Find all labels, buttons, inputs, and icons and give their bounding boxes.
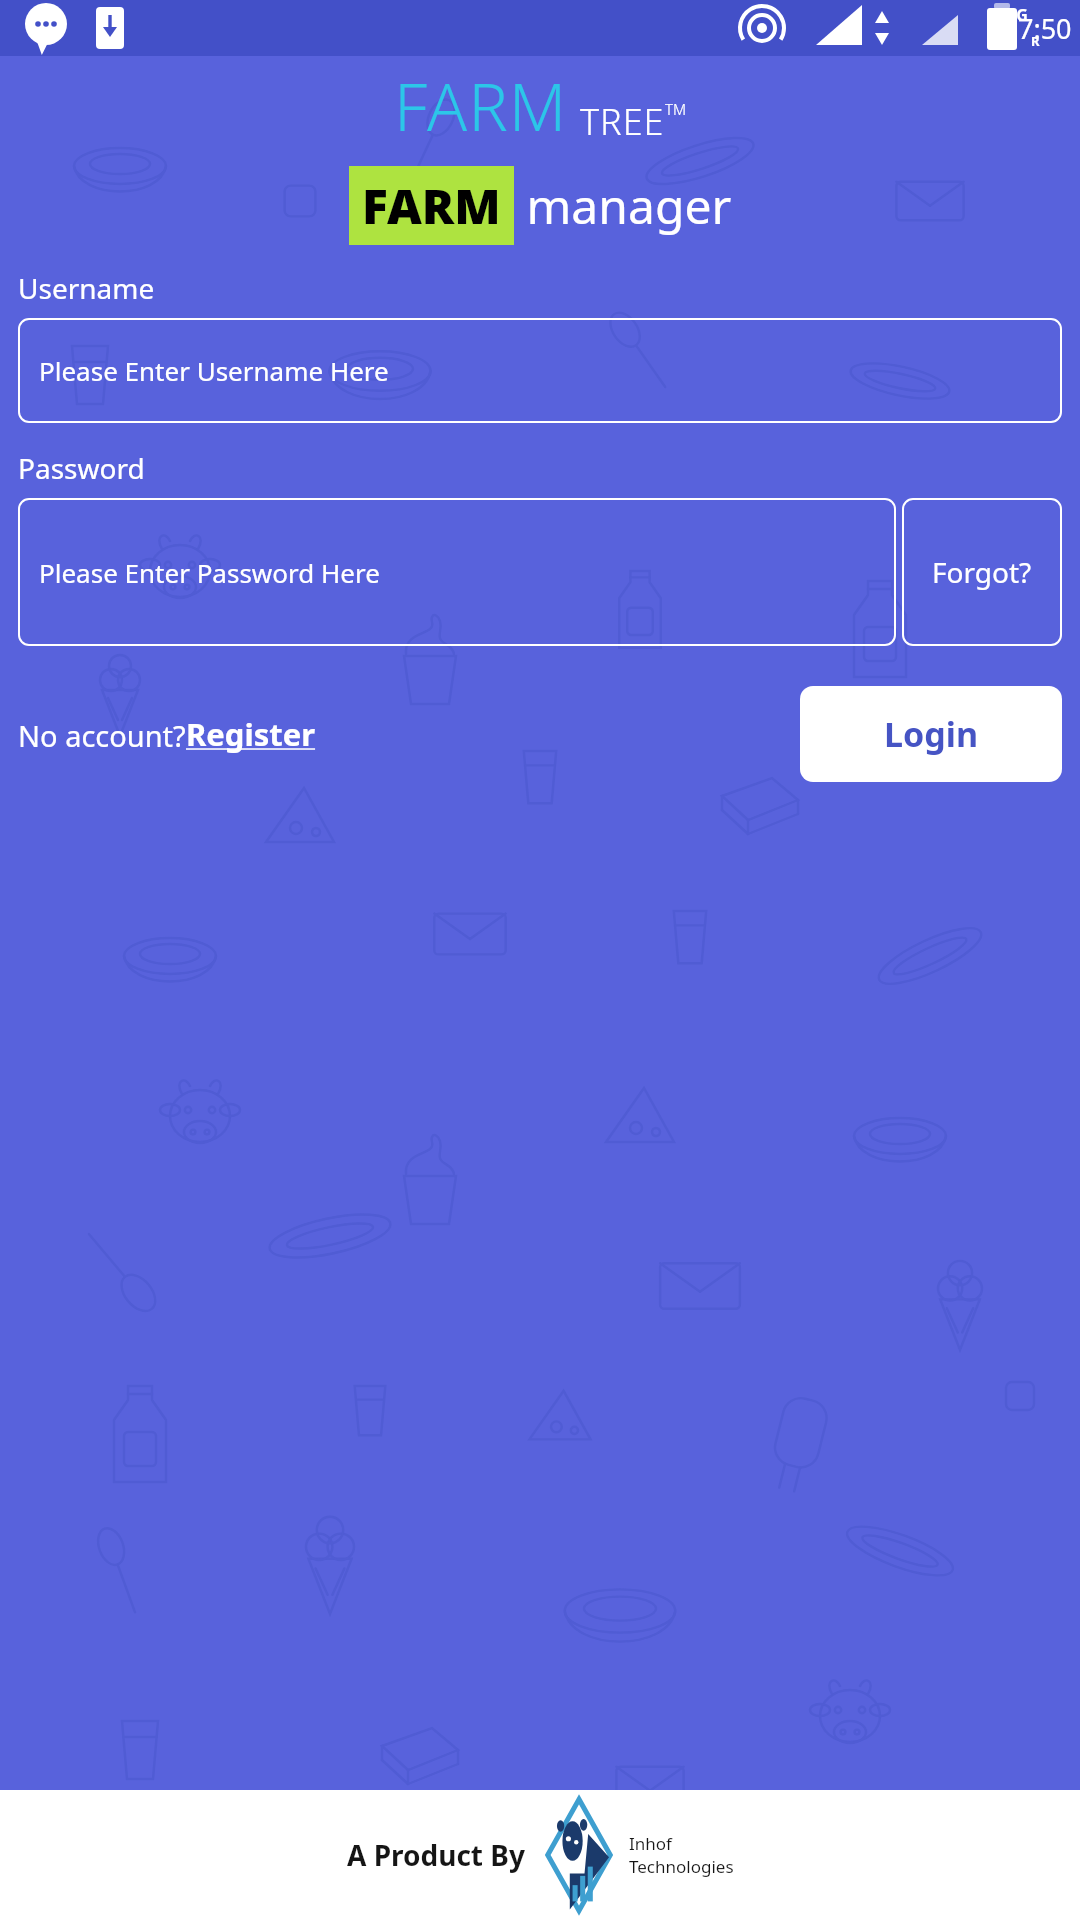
- staticText: TM: [665, 99, 687, 119]
- button[interactable]: Login: [800, 686, 1062, 782]
- staticText: 4G: [1007, 4, 1028, 26]
- staticText: Please Enter Username Here: [39, 353, 389, 388]
- other: Inhof Technologies logo: [533, 1797, 625, 1913]
- staticText: R: [1031, 32, 1040, 50]
- staticText: TREE: [580, 97, 665, 146]
- staticText: manager: [514, 173, 732, 238]
- button[interactable]: Please Enter Username Here: [18, 318, 1062, 423]
- staticText: Forgot?: [932, 553, 1032, 591]
- staticText: Inhof: [629, 1832, 672, 1855]
- button[interactable]: No account?: [18, 713, 316, 755]
- button[interactable]: Forgot?: [902, 498, 1062, 646]
- staticText: Username: [18, 269, 155, 307]
- staticText: Please Enter Password Here: [39, 555, 380, 590]
- staticText: Technologies: [629, 1855, 734, 1878]
- button[interactable]: Please Enter Password Here: [18, 498, 896, 646]
- staticText: Login: [884, 711, 979, 757]
- staticText: FARM: [394, 60, 568, 150]
- staticText: Password: [18, 449, 145, 487]
- staticText: Register: [186, 713, 316, 755]
- staticText: FARM: [362, 173, 501, 238]
- staticText: 7:50: [1018, 10, 1072, 47]
- staticText: No account?: [18, 716, 186, 755]
- staticText: A Product By: [347, 1836, 525, 1874]
